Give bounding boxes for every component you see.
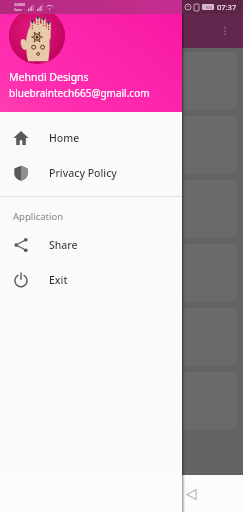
staticText: bluebraintech665@gmail.com [9, 86, 150, 100]
button[interactable]: Share [0, 227, 182, 262]
button[interactable]: Privacy Policy [0, 155, 182, 190]
staticText: Application [13, 210, 64, 223]
button[interactable]: Home [0, 120, 182, 155]
button[interactable] [6, 116, 237, 174]
staticText: Share [49, 238, 78, 252]
staticText: /sec [14, 7, 22, 12]
staticText: Mehndi Designs [16, 266, 100, 281]
staticText: 100 [205, 5, 212, 10]
button[interactable]: Profile picture [9, 8, 65, 64]
button[interactable]: Back [174, 477, 208, 511]
staticText: Mehndi Designs [9, 70, 89, 84]
staticText: Designs (2021) [16, 202, 92, 217]
button[interactable] [6, 308, 237, 366]
staticText: 07:37 [217, 2, 237, 12]
button[interactable]: Exit [0, 262, 182, 297]
button[interactable] [6, 52, 237, 110]
staticText: Privacy Policy [49, 166, 117, 180]
button[interactable]: Designs (2021) [6, 180, 237, 238]
staticText: 20MB [14, 2, 25, 7]
button[interactable] [6, 372, 237, 430]
button[interactable]: More options [214, 20, 236, 42]
staticText: Home [49, 131, 80, 145]
button[interactable]: Mehndi Designs [6, 244, 237, 302]
staticText: Exit [49, 273, 68, 287]
